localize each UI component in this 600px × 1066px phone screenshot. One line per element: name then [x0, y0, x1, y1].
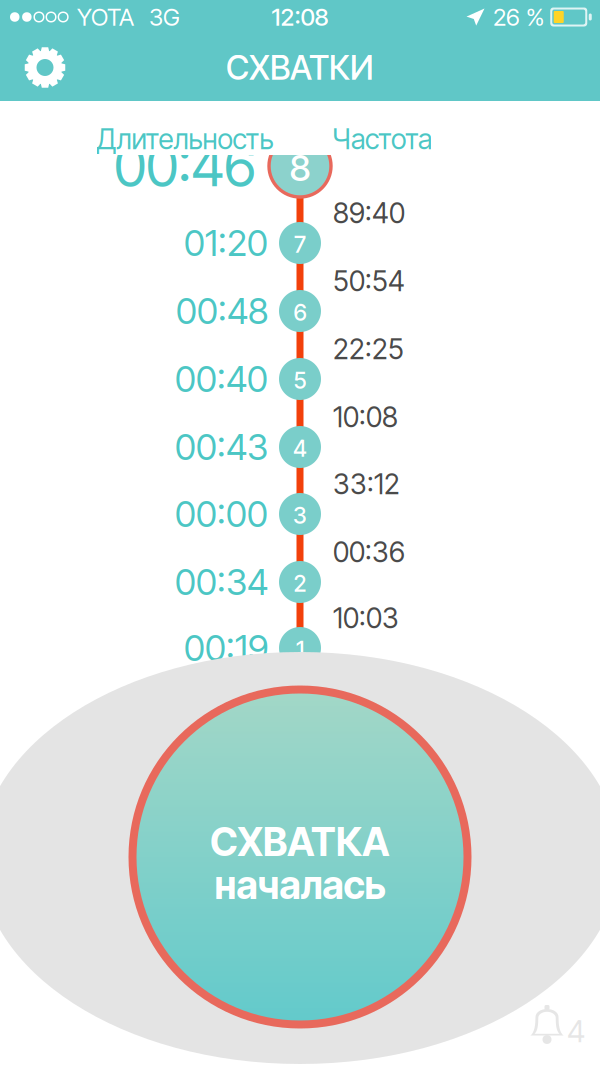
staticText: СХВАТКА [210, 819, 390, 865]
staticText: 4 [567, 1012, 585, 1049]
staticText: 00:43 [175, 425, 268, 469]
staticText: 26 % [493, 2, 544, 31]
button[interactable]: Settings [10, 34, 80, 101]
button[interactable]: СХВАТКА [128, 685, 471, 1028]
staticText: 01:20 [184, 221, 268, 265]
staticText: Длительность [96, 122, 273, 156]
staticText: 00:34 [175, 560, 268, 604]
staticText: 00:19 [184, 626, 268, 670]
staticText: началась [214, 862, 385, 908]
staticText: СХВАТКИ [226, 47, 374, 88]
staticText: 10:03 [333, 601, 399, 635]
staticText: 10:08 [333, 400, 398, 434]
staticText: YOTA [77, 2, 134, 31]
staticText: 00:00 [175, 492, 268, 536]
staticText: 50:54 [333, 264, 405, 298]
staticText: 89:40 [333, 196, 405, 230]
staticText: 00:48 [176, 289, 268, 333]
staticText: 3 [293, 502, 307, 529]
staticText: 7 [294, 231, 306, 258]
staticText: Частота [332, 122, 432, 156]
staticText: 12:08 [271, 2, 328, 31]
staticText: 00:46 [114, 132, 256, 200]
staticText: 5 [293, 367, 306, 394]
staticText: 6 [293, 299, 306, 326]
staticText: 3G [149, 2, 180, 31]
staticText: 22:25 [333, 332, 404, 366]
staticText: 2 [293, 570, 306, 597]
staticText: 00:40 [175, 357, 268, 401]
staticText: 4 [293, 435, 307, 462]
staticText: 33:12 [333, 467, 400, 501]
staticText: 1 [296, 636, 304, 663]
staticText: 8 [289, 146, 310, 190]
staticText: 00:36 [333, 535, 405, 569]
